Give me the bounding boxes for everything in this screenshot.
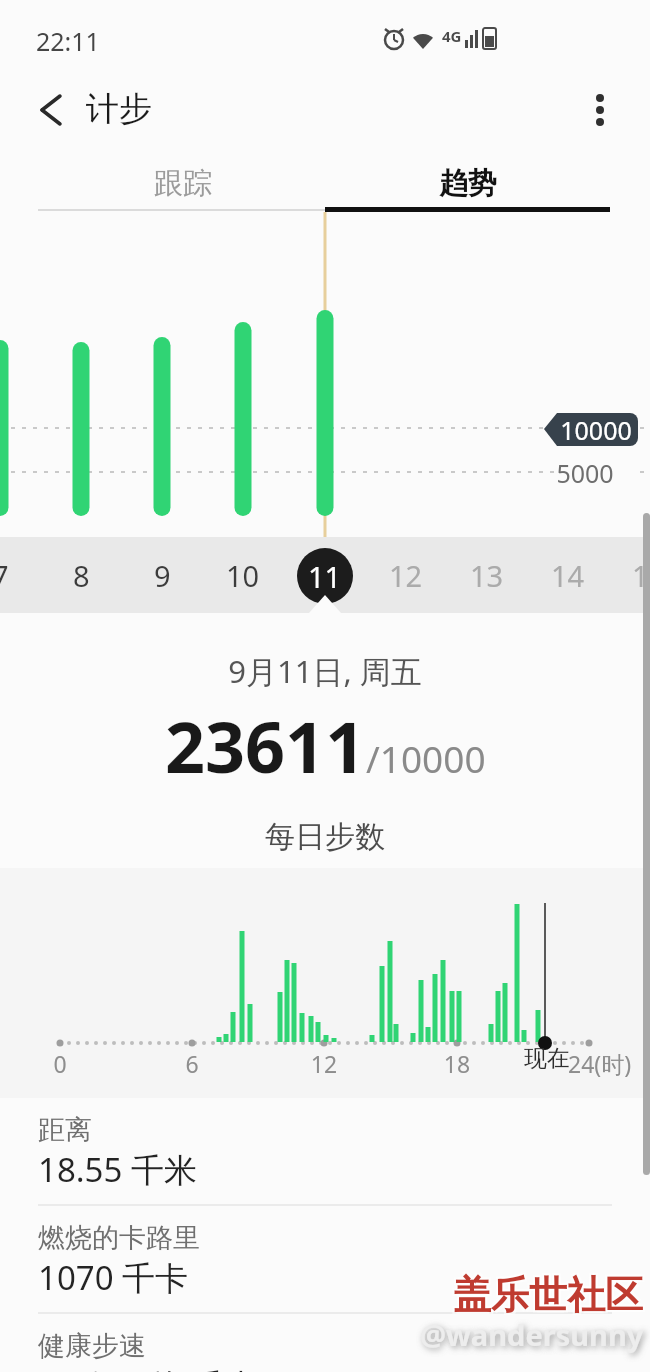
staticText: 跟踪	[154, 165, 212, 202]
button[interactable]: 燃烧的卡路里	[0, 1206, 650, 1312]
staticText: 8	[73, 556, 90, 595]
staticText: 9	[154, 556, 171, 595]
staticText: 10分19秒/千米	[38, 1363, 258, 1372]
staticText: 6	[162, 1048, 222, 1079]
staticText: 盖乐世社区	[451, 1269, 641, 1317]
button[interactable]: 10	[203, 549, 283, 601]
staticText: 0	[30, 1048, 90, 1079]
staticText: /10000	[366, 733, 486, 783]
staticText: 22:11	[36, 24, 100, 58]
staticText: 距离	[38, 1113, 92, 1147]
button[interactable]	[580, 88, 622, 132]
staticText: 健康步速	[38, 1329, 146, 1363]
staticText: 14	[551, 556, 585, 595]
staticText: 燃烧的卡路里	[38, 1221, 200, 1255]
staticText: 12	[389, 556, 423, 595]
staticText: 5000	[545, 456, 625, 489]
staticText: 趋势	[439, 165, 497, 202]
button[interactable]: 健康步速	[0, 1314, 650, 1372]
button[interactable]: 13	[447, 549, 527, 601]
staticText: 盖乐世社区	[453, 1271, 643, 1319]
staticText: @wandersunny	[420, 1315, 644, 1354]
staticText: 9月11日, 周五	[0, 650, 650, 692]
staticText: 23611	[165, 698, 366, 793]
staticText: 1070 千卡	[38, 1255, 189, 1300]
staticText: 每日步数	[0, 818, 650, 856]
staticText: 现在	[524, 1044, 570, 1073]
staticText: 24(时)	[568, 1048, 632, 1079]
button[interactable]: 9	[122, 549, 202, 601]
staticText: 18.55 千米	[38, 1147, 197, 1192]
button[interactable]: 距离	[0, 1098, 650, 1204]
button[interactable]: 7	[0, 549, 40, 601]
staticText: 10	[226, 556, 260, 595]
staticText: 10000	[556, 413, 636, 446]
button[interactable]	[30, 88, 74, 132]
staticText: 12	[294, 1048, 354, 1079]
staticText: 计步	[86, 88, 152, 130]
staticText: 15	[632, 556, 650, 595]
button[interactable]: 8	[41, 549, 121, 601]
button[interactable]: 12	[366, 549, 446, 601]
staticText: 4G	[442, 26, 462, 46]
staticText: 7	[0, 556, 9, 595]
button[interactable]: 跟踪	[40, 155, 325, 211]
button[interactable]: 11	[297, 548, 353, 604]
staticText: 13	[470, 556, 504, 595]
staticText: 盖乐世社区	[455, 1269, 645, 1317]
staticText: 11	[308, 557, 342, 596]
button[interactable]: 趋势	[325, 155, 610, 211]
staticText: 盖乐世社区	[451, 1273, 641, 1321]
staticText: 盖乐世社区	[455, 1273, 645, 1321]
staticText: 18	[427, 1048, 487, 1079]
button[interactable]: 14	[528, 549, 608, 601]
button[interactable]: 15	[609, 549, 650, 601]
